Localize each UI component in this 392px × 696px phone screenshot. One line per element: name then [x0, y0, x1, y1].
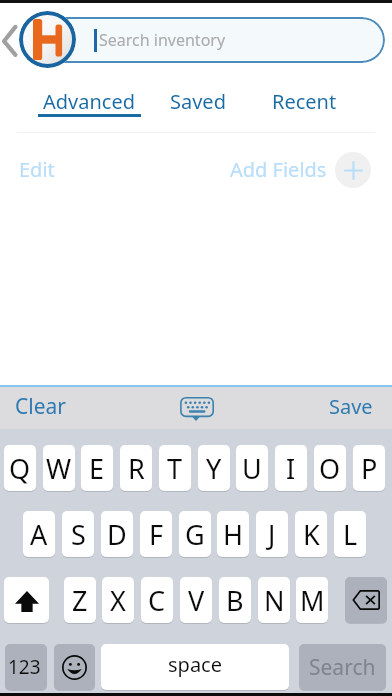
button[interactable]: G — [179, 511, 211, 557]
button[interactable]: Recent — [266, 80, 341, 118]
staticText: R — [128, 450, 145, 487]
staticText: P — [361, 450, 378, 487]
button[interactable]: Search — [299, 644, 386, 690]
button[interactable]: Hide keyboard — [178, 394, 216, 422]
button[interactable]: P — [353, 445, 385, 491]
staticText: W — [46, 450, 72, 487]
button[interactable]: N — [258, 577, 290, 623]
button[interactable]: Search inventory — [42, 17, 385, 63]
button[interactable]: H — [217, 511, 249, 557]
button[interactable]: O — [314, 445, 346, 491]
staticText: Advanced — [43, 88, 135, 115]
staticText: G — [185, 516, 205, 553]
staticText: Save — [329, 393, 373, 420]
staticText: X — [110, 582, 126, 619]
staticText: Add Fields — [230, 156, 327, 183]
button[interactable]: V — [180, 577, 212, 623]
staticText: S — [71, 516, 86, 553]
staticText: Q — [9, 450, 31, 487]
staticText: I — [286, 450, 296, 487]
button[interactable]: Clear — [6, 386, 76, 428]
button[interactable]: C — [141, 577, 173, 623]
button[interactable]: Save — [320, 386, 382, 428]
button[interactable]: Shift — [4, 577, 49, 623]
staticText: H — [223, 516, 244, 553]
staticText: D — [107, 516, 127, 553]
staticText: Y — [206, 450, 222, 487]
staticText: L — [343, 516, 358, 553]
button[interactable]: space — [101, 644, 289, 690]
button[interactable]: Q — [4, 445, 36, 491]
button[interactable]: Z — [64, 577, 96, 623]
staticText: O — [319, 450, 341, 487]
button[interactable]: S — [62, 511, 94, 557]
button[interactable]: Advanced — [37, 80, 140, 118]
button[interactable]: B — [219, 577, 251, 623]
staticText: T — [167, 450, 183, 487]
button[interactable]: Back — [0, 20, 20, 62]
button[interactable]: Add — [335, 152, 371, 188]
button[interactable]: T — [159, 445, 191, 491]
button[interactable]: 123 — [5, 644, 47, 690]
staticText: C — [148, 582, 166, 619]
button[interactable]: D — [101, 511, 133, 557]
staticText: Clear — [15, 392, 66, 421]
button[interactable]: K — [295, 511, 327, 557]
button[interactable]: Home — [19, 11, 76, 68]
button[interactable]: W — [43, 445, 75, 491]
button[interactable]: E — [81, 445, 113, 491]
staticText: F — [149, 516, 164, 553]
button[interactable]: I — [275, 445, 307, 491]
staticText: U — [242, 450, 262, 487]
button[interactable]: L — [334, 511, 366, 557]
button[interactable]: A — [23, 511, 55, 557]
staticText: 123 — [8, 654, 41, 680]
button[interactable]: F — [140, 511, 172, 557]
staticText: Recent — [272, 88, 337, 115]
button[interactable]: Saved — [164, 80, 230, 118]
staticText: E — [89, 450, 105, 487]
staticText: Z — [72, 582, 88, 619]
staticText: K — [303, 516, 320, 553]
button[interactable]: J — [256, 511, 288, 557]
staticText: A — [30, 516, 48, 553]
button[interactable]: Edit — [8, 148, 66, 190]
button[interactable]: Emoji — [54, 644, 95, 690]
staticText: J — [268, 516, 276, 553]
staticText: Edit — [19, 156, 55, 183]
staticText: M — [300, 582, 325, 619]
staticText: Search — [309, 653, 376, 682]
staticText: Search inventory — [99, 29, 226, 51]
button[interactable]: Backspace — [345, 577, 387, 623]
button[interactable]: Y — [198, 445, 230, 491]
staticText: V — [188, 582, 205, 619]
staticText: Saved — [170, 88, 226, 115]
staticText: B — [226, 582, 244, 619]
button[interactable]: Add Fields — [221, 148, 335, 190]
button[interactable]: X — [102, 577, 134, 623]
button[interactable]: R — [120, 445, 152, 491]
button[interactable]: M — [296, 577, 328, 623]
staticText: space — [168, 651, 222, 678]
button[interactable]: U — [236, 445, 268, 491]
staticText: N — [264, 582, 285, 619]
